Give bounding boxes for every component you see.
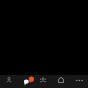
button[interactable]: Profile <box>0 75 19 88</box>
button[interactable]: Home <box>52 75 70 88</box>
button[interactable]: Groups <box>36 75 52 88</box>
button[interactable]: Chats <box>19 75 36 88</box>
button[interactable]: More options <box>70 75 88 88</box>
